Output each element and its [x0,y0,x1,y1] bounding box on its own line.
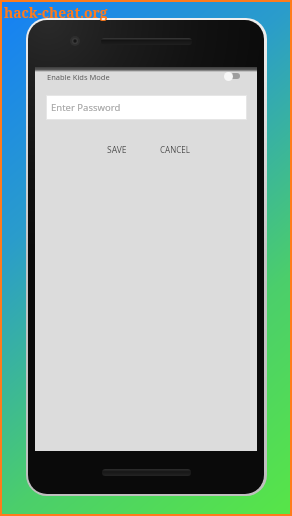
staticText: Enable Kids Mode [47,72,110,82]
button[interactable]: Enter Password [47,96,246,119]
staticText: Enter Password [51,101,121,114]
button[interactable]: SAVE [101,140,133,160]
staticText: hack-cheat.org [4,3,108,22]
button[interactable]: CANCEL [154,140,196,159]
staticText: CANCEL [160,144,190,155]
button[interactable]: Enable Kids Mode [35,70,257,95]
staticText: SAVE [107,144,127,156]
